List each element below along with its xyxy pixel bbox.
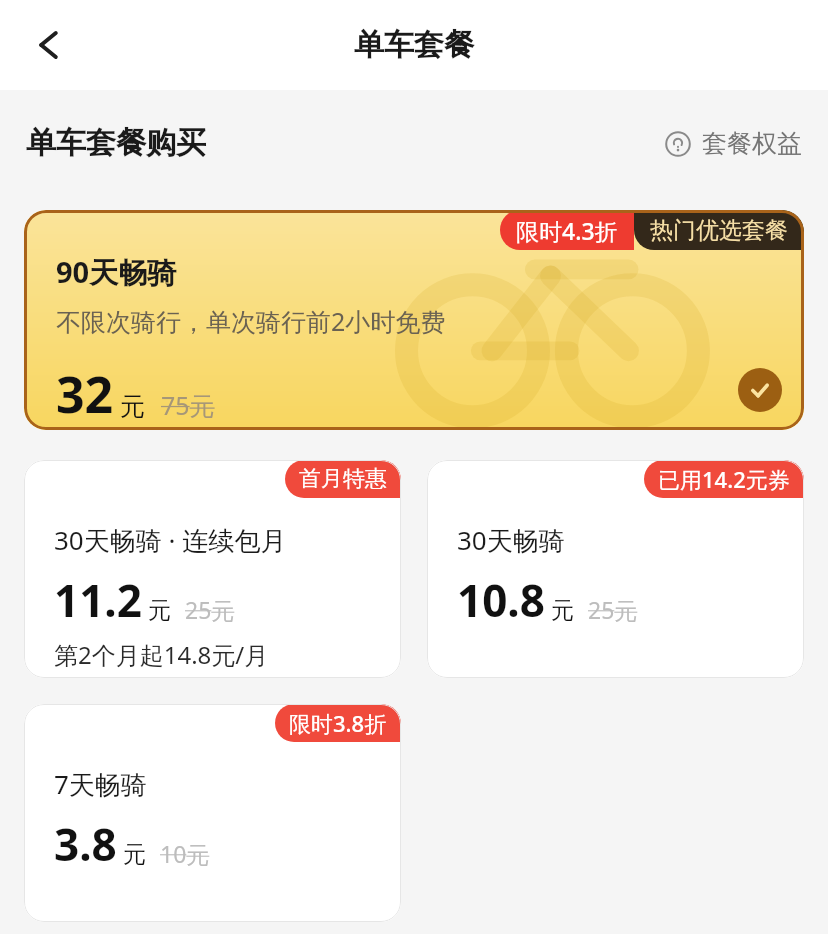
staticText: 90天畅骑: [56, 252, 177, 292]
button[interactable]: 套餐权益: [665, 128, 802, 159]
button[interactable]: Selected: [738, 368, 782, 412]
button[interactable]: 首月特惠: [24, 460, 401, 678]
staticText: 单车套餐购买: [26, 124, 206, 162]
staticText: 第2个月起14.8元/月: [54, 638, 269, 671]
staticText: 11.2: [54, 570, 142, 630]
staticText: 元: [148, 596, 171, 625]
staticText: 单车套餐: [354, 26, 474, 64]
staticText: 25元: [588, 594, 638, 625]
staticText: 限时3.8折: [289, 708, 387, 738]
button[interactable]: 已用14.2元券: [427, 460, 804, 678]
staticText: 75元: [161, 388, 215, 422]
staticText: 元: [123, 840, 146, 869]
button[interactable]: 限时3.8折: [24, 704, 401, 922]
staticText: 10.8: [457, 570, 545, 630]
button[interactable]: 限时4.3折: [24, 210, 804, 430]
staticText: 30天畅骑 · 连续包月: [54, 522, 287, 558]
staticText: 不限次骑行，单次骑行前2小时免费: [56, 304, 446, 338]
staticText: 已用14.2元券: [658, 464, 790, 494]
staticText: 热门优选套餐: [650, 216, 788, 245]
button[interactable]: Back: [18, 14, 80, 76]
staticText: 10元: [160, 838, 210, 869]
staticText: 30天畅骑: [457, 522, 565, 558]
staticText: 限时4.3折: [516, 215, 618, 246]
staticText: 套餐权益: [702, 128, 802, 159]
staticText: 32: [56, 360, 114, 428]
staticText: 7天畅骑: [54, 766, 147, 802]
staticText: 元: [551, 596, 574, 625]
staticText: 元: [120, 391, 145, 422]
staticText: 首月特惠: [299, 465, 387, 493]
staticText: 25元: [185, 594, 235, 625]
staticText: 3.8: [54, 814, 117, 874]
